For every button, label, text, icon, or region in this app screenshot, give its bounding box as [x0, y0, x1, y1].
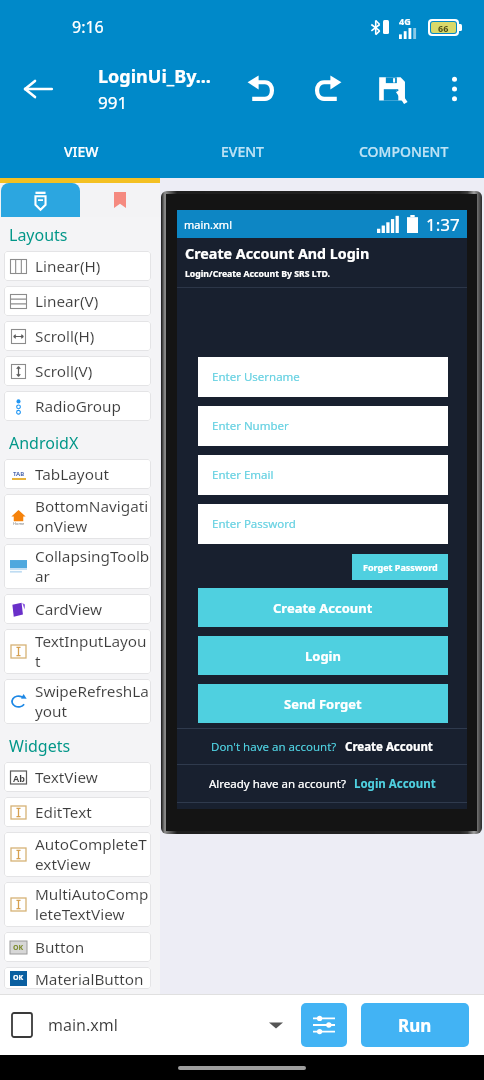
staticText: Forget Password — [363, 561, 438, 573]
staticText: Home — [13, 521, 25, 526]
staticText: EVENT — [221, 142, 264, 161]
button[interactable]: Enter Username — [198, 357, 448, 397]
staticText: Widgets — [9, 735, 71, 757]
button[interactable]: Widgets palette — [1, 183, 80, 217]
staticText: AutoCompleteTextView — [35, 834, 150, 875]
staticText: Layouts — [9, 224, 68, 246]
staticText: 4G — [399, 15, 411, 27]
staticText: CardView — [35, 599, 103, 620]
staticText: CollapsingToolbar — [35, 546, 150, 587]
staticText: TAB — [13, 470, 25, 478]
staticText: Don't have an account? — [211, 739, 337, 755]
button[interactable]: Redo — [294, 54, 360, 124]
button[interactable]: Save — [360, 54, 424, 124]
button[interactable]: Select file — [12, 994, 283, 1055]
staticText: Enter Username — [212, 369, 300, 385]
staticText: MultiAutoCompleteTextView — [35, 884, 150, 925]
button[interactable]: TextInputLayout — [4, 629, 151, 674]
staticText: AndroidX — [9, 432, 79, 454]
staticText: TabLayout — [35, 464, 109, 485]
button[interactable]: Already have an account? — [177, 765, 467, 802]
button[interactable]: Scroll(H) — [4, 321, 151, 351]
staticText: Login Account — [354, 776, 436, 792]
button[interactable]: SwipeRefreshLayout — [4, 679, 151, 724]
staticText: VIEW — [64, 142, 99, 161]
staticText: RadioGroup — [35, 396, 121, 417]
staticText: LoginUi_By... — [98, 64, 211, 89]
button[interactable]: Login — [198, 636, 448, 675]
staticText: Enter Password — [212, 516, 296, 532]
staticText: 1:37 — [426, 213, 460, 236]
staticText: main.xml — [48, 1014, 118, 1036]
button[interactable]: Ab — [4, 762, 151, 792]
button[interactable]: CollapsingToolbar — [4, 544, 151, 589]
button[interactable]: Linear(V) — [4, 286, 151, 316]
button[interactable]: Home — [4, 494, 151, 539]
staticText: Linear(H) — [35, 256, 101, 277]
button[interactable]: EVENT — [162, 124, 323, 178]
staticText: Run — [398, 1014, 432, 1037]
button[interactable]: Saved items — [80, 183, 160, 217]
button[interactable]: Don't have an account? — [177, 729, 467, 764]
staticText: Create Account — [345, 739, 433, 755]
staticText: Login/Create Account By SRS LTD. — [185, 268, 330, 280]
button[interactable]: CardView — [4, 594, 151, 624]
staticText: Enter Email — [212, 467, 274, 483]
staticText: Enter Number — [212, 418, 289, 434]
button[interactable]: Scroll(V) — [4, 356, 151, 386]
button[interactable]: Enter Email — [198, 455, 448, 495]
staticText: Ab — [13, 772, 25, 784]
button[interactable]: AutoCompleteTextView — [4, 832, 151, 877]
button[interactable]: Send Forget — [198, 684, 448, 723]
button[interactable]: Create Account — [198, 588, 448, 627]
button[interactable]: MultiAutoCompleteTextView — [4, 882, 151, 927]
button[interactable]: Back — [0, 54, 76, 124]
button[interactable]: OK — [4, 932, 151, 962]
staticText: OK — [13, 943, 24, 953]
staticText: Already have an account? — [209, 776, 346, 792]
button[interactable]: VIEW — [0, 124, 162, 178]
staticText: 9:16 — [72, 16, 104, 38]
button[interactable]: Enter Password — [198, 504, 448, 544]
staticText: Button — [35, 937, 85, 958]
staticText: COMPONENT — [359, 142, 449, 161]
button[interactable]: More options — [424, 54, 484, 124]
staticText: OK — [13, 973, 24, 983]
staticText: main.xml — [184, 217, 232, 232]
button[interactable]: Forget Password — [352, 554, 448, 580]
staticText: TextInputLayout — [35, 631, 150, 672]
staticText: MaterialButton — [35, 969, 144, 987]
button[interactable]: OK — [4, 967, 151, 989]
button[interactable]: EditText — [4, 797, 151, 827]
button[interactable]: RadioGroup — [4, 391, 151, 421]
staticText: BottomNavigationView — [35, 496, 150, 537]
button[interactable]: Undo — [228, 54, 294, 124]
button[interactable]: COMPONENT — [323, 124, 484, 178]
staticText: Create Account And Login — [185, 244, 370, 263]
staticText: Send Forget — [284, 695, 362, 713]
button[interactable]: TAB — [4, 459, 151, 489]
button[interactable]: Enter Number — [198, 406, 448, 446]
staticText: Scroll(V) — [35, 361, 93, 382]
staticText: Linear(V) — [35, 291, 99, 312]
staticText: SwipeRefreshLayout — [35, 681, 150, 722]
staticText: Create Account — [273, 599, 373, 617]
staticText: EditText — [35, 802, 92, 823]
button[interactable]: Run — [361, 1003, 469, 1047]
staticText: Scroll(H) — [35, 326, 95, 347]
staticText: 66 — [438, 22, 449, 33]
staticText: TextView — [35, 767, 98, 788]
staticText: Login — [305, 647, 341, 665]
staticText: 991 — [98, 91, 128, 114]
button[interactable]: Linear(H) — [4, 251, 151, 281]
button[interactable]: Settings — [301, 1003, 347, 1047]
